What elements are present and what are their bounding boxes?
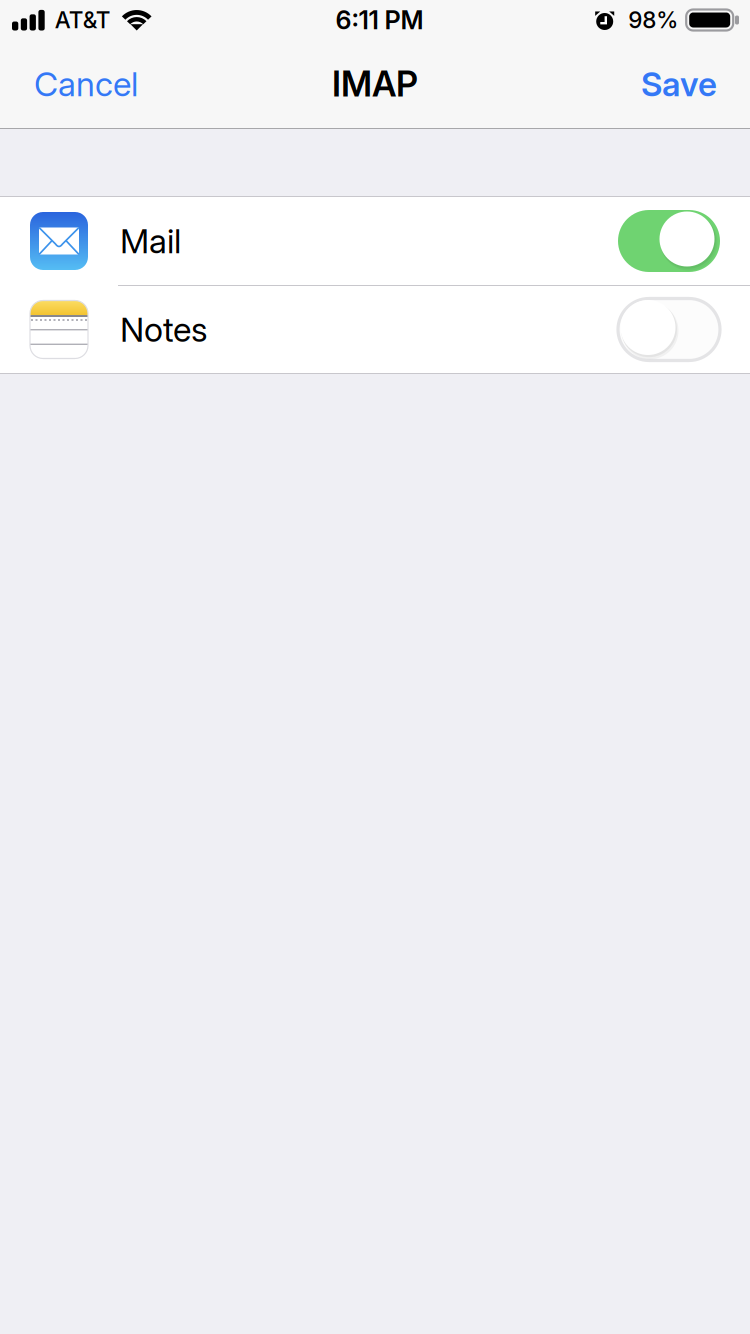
staticText: Cancel (34, 64, 138, 104)
staticText: IMAP (332, 63, 418, 105)
button[interactable]: Save (619, 46, 717, 122)
staticText: Notes (120, 309, 208, 350)
button[interactable]: Cancel (34, 46, 160, 122)
staticText: 98% (628, 6, 678, 34)
staticText: AT&T (55, 6, 111, 34)
button[interactable]: Mail (0, 197, 750, 286)
staticText: 6:11 PM (335, 5, 423, 35)
staticText: Save (641, 64, 717, 104)
button[interactable]: Notes (0, 286, 750, 373)
staticText: Mail (120, 221, 181, 261)
